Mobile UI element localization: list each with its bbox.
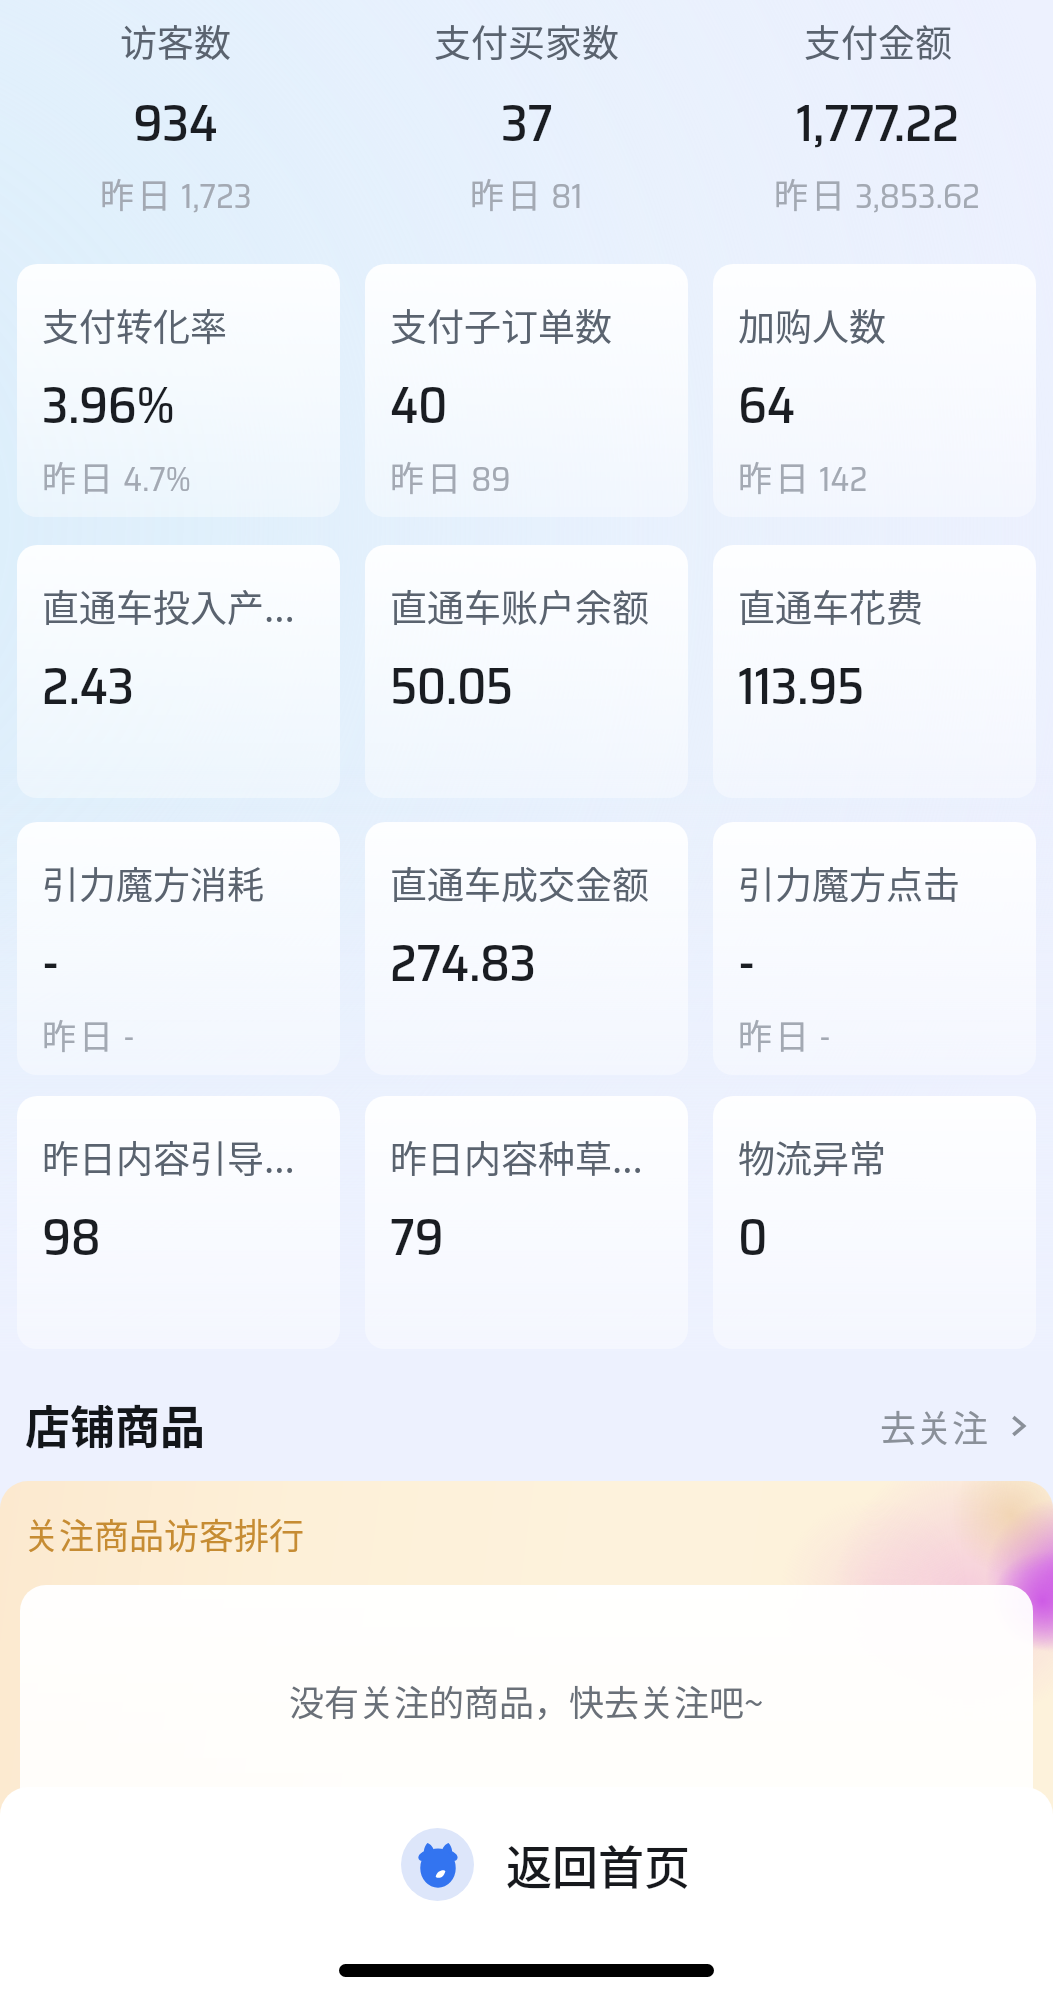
button[interactable]: 直通车花费 [713,545,1036,798]
staticText: 274.83 [390,923,536,1003]
staticText: 引力魔方消耗 [42,856,264,910]
staticText: 支付子订单数 [390,298,612,352]
staticText: 昨日 - [42,1010,135,1064]
staticText: 50.05 [390,646,513,726]
staticText: 支付买家数 [434,14,619,68]
staticText: 昨日内容引导... [42,1130,295,1184]
button[interactable]: 加购人数 [713,264,1036,517]
staticText: 40 [390,365,448,445]
staticText: 支付金额 [804,14,952,68]
staticText: 昨日 81 [470,169,583,223]
button[interactable]: 去关注 [880,1400,1031,1452]
staticText: 3.96% [42,365,175,445]
staticText: 店铺商品 [25,1392,206,1457]
staticText: 昨日 1,723 [100,169,252,223]
staticText: 昨日内容种草... [390,1130,643,1184]
staticText: 加购人数 [738,298,886,352]
staticText: 昨日 142 [738,452,868,506]
staticText: 支付转化率 [42,298,227,352]
button[interactable]: 引力魔方消耗 [17,822,340,1075]
button[interactable]: 支付金额 [702,0,1053,236]
staticText: 返回首页 [506,1831,690,1898]
staticText: 直通车花费 [738,579,923,633]
staticText: 934 [133,82,218,164]
button[interactable]: 直通车账户余额 [365,545,688,798]
staticText: 2.43 [42,646,134,726]
button[interactable]: 物流异常 [713,1096,1036,1349]
staticText: - [738,923,755,1003]
staticText: 37 [501,82,553,164]
staticText: 昨日 - [738,1010,831,1064]
staticText: 引力魔方点击 [738,856,960,910]
staticText: 113.95 [738,646,864,726]
button[interactable]: 直通车成交金额 [365,822,688,1075]
staticText: 没有关注的商品，快去关注吧~ [289,1675,764,1726]
staticText: 98 [42,1197,101,1277]
button[interactable]: 直通车投入产... [17,545,340,798]
staticText: 64 [738,365,795,445]
button[interactable]: 昨日内容种草... [365,1096,688,1349]
staticText: 物流异常 [738,1130,886,1184]
staticText: 直通车投入产... [42,579,295,633]
staticText: 直通车账户余额 [390,579,649,633]
button[interactable]: 引力魔方点击 [713,822,1036,1075]
staticText: 去关注 [880,1400,989,1452]
button[interactable]: 支付子订单数 [365,264,688,517]
button[interactable]: 支付转化率 [17,264,340,517]
button[interactable]: 支付买家数 [351,0,702,236]
staticText: 直通车成交金额 [390,856,649,910]
staticText: - [42,923,59,1003]
button[interactable]: 昨日内容引导... [17,1096,340,1349]
button[interactable]: 返回首页 [401,1828,690,1901]
staticText: 1,777.22 [796,82,959,164]
staticText: 昨日 89 [390,452,511,506]
staticText: 昨日 4.7% [42,452,192,506]
staticText: 关注商品访客排行 [24,1508,305,1559]
staticText: 0 [738,1197,767,1277]
button[interactable]: 访客数 [0,0,351,236]
staticText: 昨日 3,853.62 [774,169,981,223]
staticText: 79 [390,1197,444,1277]
staticText: 访客数 [120,14,231,68]
